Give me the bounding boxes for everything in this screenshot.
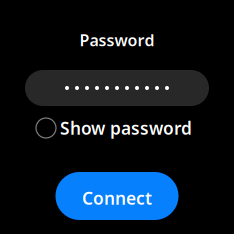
button[interactable]: Password xyxy=(25,70,209,106)
staticText: Show password xyxy=(60,116,192,139)
button[interactable]: Connect xyxy=(55,172,178,220)
button[interactable]: Show password xyxy=(0,117,234,139)
staticText: Connect xyxy=(82,186,152,209)
staticText: Password xyxy=(79,29,154,51)
